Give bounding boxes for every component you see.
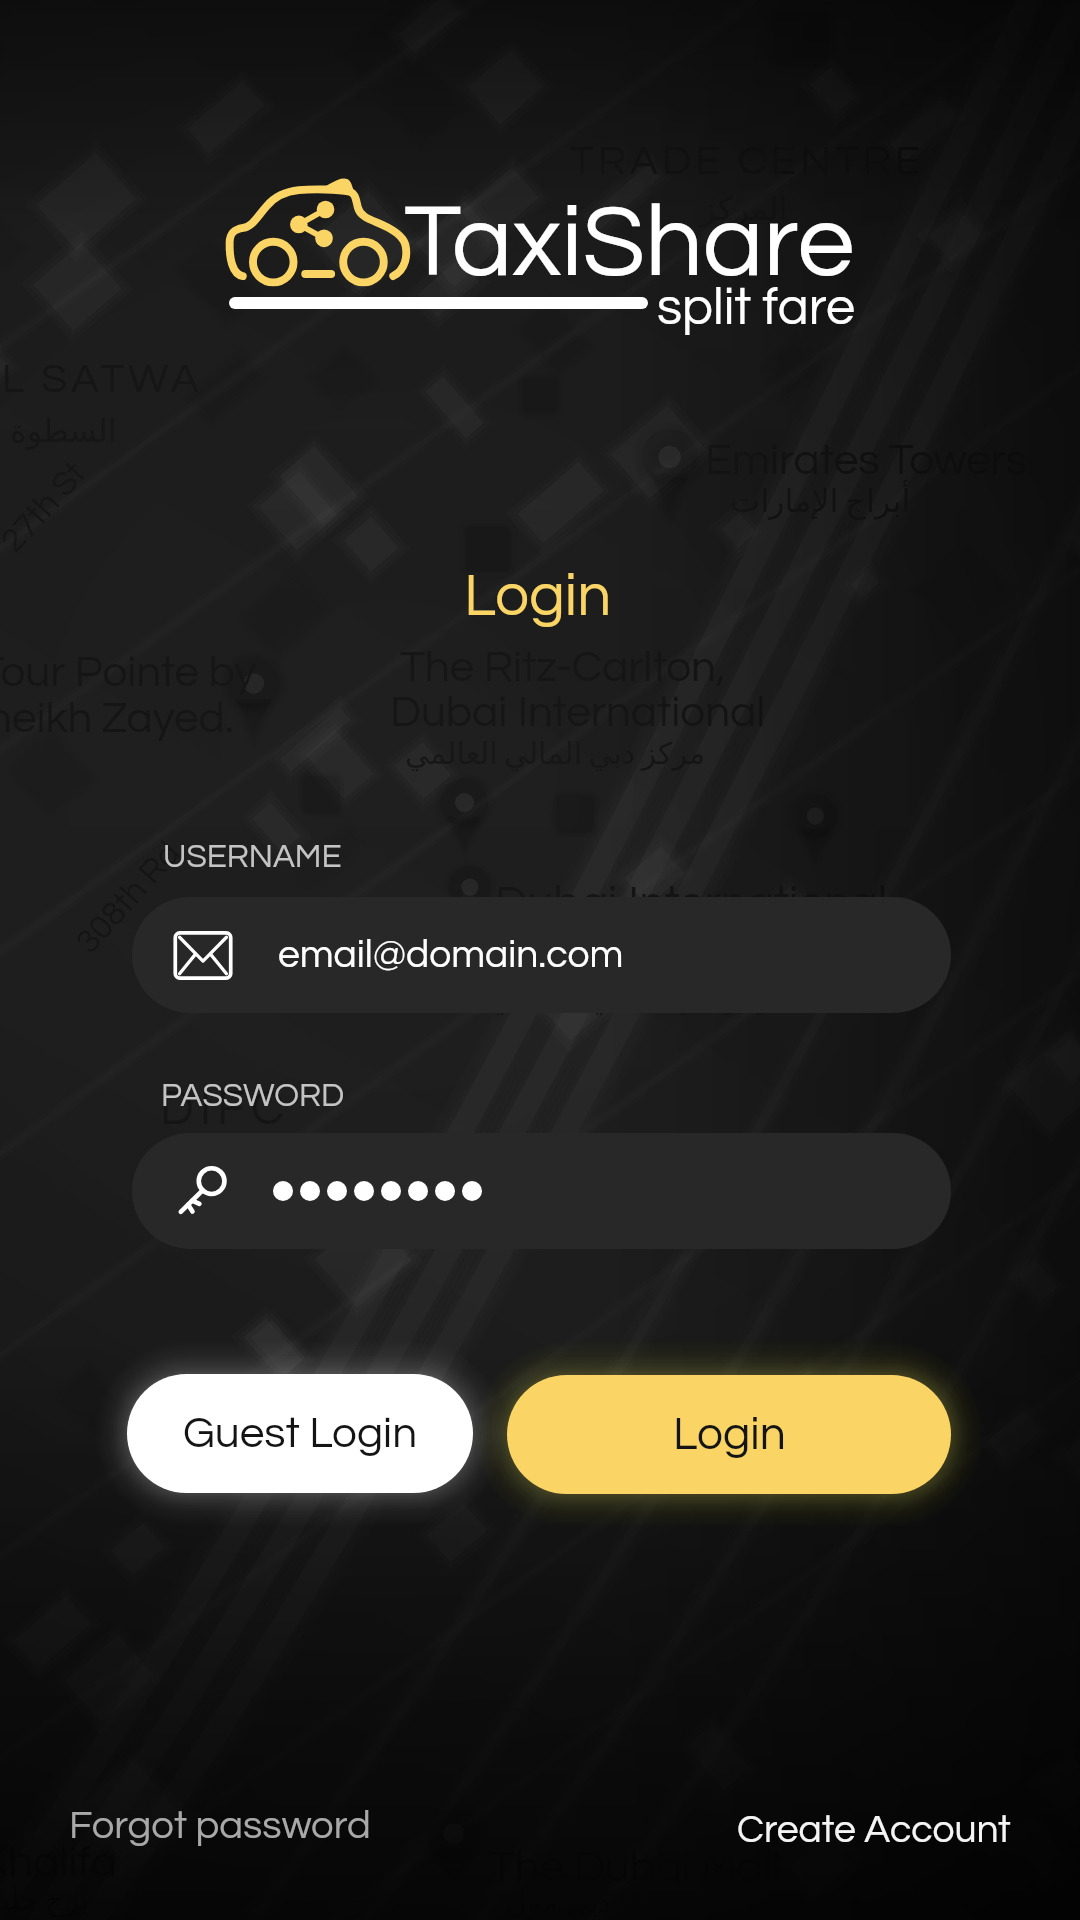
staticText: DIFC xyxy=(160,1085,291,1134)
staticText: المركز xyxy=(700,190,788,227)
staticText: split fare xyxy=(657,281,855,335)
other: Email xyxy=(173,931,233,980)
staticText: TaxiShare xyxy=(404,191,855,296)
button[interactable]: Create Account xyxy=(713,1786,1035,1874)
staticText: أبراج الإمارات xyxy=(730,482,911,519)
staticText: USERNAME xyxy=(163,840,342,874)
staticText: Sheikh Zayed. xyxy=(0,696,234,741)
button[interactable]: Password xyxy=(132,1133,951,1249)
staticText: Login xyxy=(464,566,612,628)
staticText: 308th Rd xyxy=(70,835,187,960)
staticText: al Centre xyxy=(520,930,706,977)
staticText: Dubai International xyxy=(390,690,766,735)
button[interactable]: Guest Login xyxy=(127,1374,473,1493)
staticText: Dubai International xyxy=(495,880,888,927)
button[interactable]: Forgot password xyxy=(45,1781,395,1870)
staticText: Emirates Towers xyxy=(705,438,1027,483)
staticText: Guest Login xyxy=(183,1411,418,1456)
staticText: Tour Pointe by xyxy=(0,650,257,695)
staticText: PASSWORD xyxy=(161,1079,345,1113)
staticText: Create Account xyxy=(737,1810,1011,1850)
button[interactable]: Login xyxy=(507,1375,951,1494)
staticText: Forgot password xyxy=(69,1805,371,1846)
staticText: Login xyxy=(673,1411,786,1458)
staticText: مركز دبي المالي العالمي xyxy=(405,736,706,771)
other: Password xyxy=(173,1158,239,1224)
button[interactable]: Email xyxy=(132,897,951,1013)
staticText: TRADE CENTRE xyxy=(570,140,925,183)
staticText: The Ritz-Carlton, xyxy=(400,645,726,690)
staticText: email@domain.com xyxy=(278,935,624,975)
